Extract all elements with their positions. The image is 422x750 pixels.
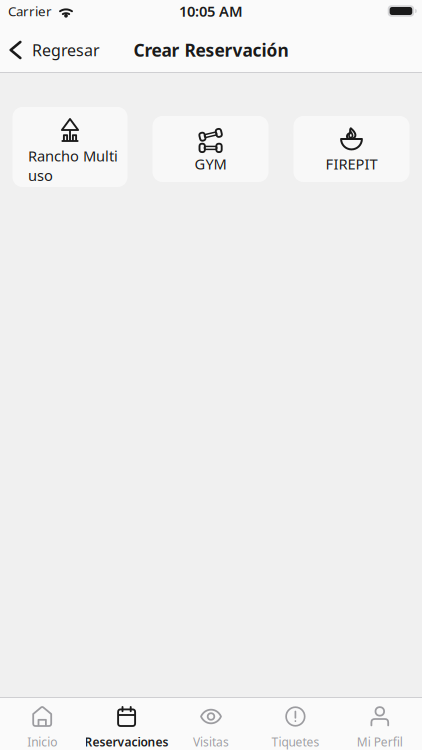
staticText: Visitas: [193, 734, 229, 750]
button[interactable]: Reservaciones: [84, 698, 169, 750]
button[interactable]: Mi Perfil: [338, 698, 422, 750]
staticText: GYM: [194, 154, 226, 173]
staticText: FIREPIT: [325, 154, 377, 173]
button[interactable]: Rancho Multi uso: [12, 107, 127, 187]
button[interactable]: Regresar: [0, 28, 108, 72]
staticText: Rancho Multi uso: [28, 146, 118, 185]
staticText: Mi Perfil: [357, 734, 403, 750]
staticText: Tiquetes: [271, 734, 319, 750]
button[interactable]: Inicio: [0, 698, 84, 750]
staticText: Regresar: [32, 39, 100, 61]
staticText: Carrier: [8, 2, 52, 20]
staticText: Reservaciones: [85, 734, 169, 750]
button[interactable]: GYM: [152, 116, 268, 182]
staticText: Inicio: [27, 734, 57, 750]
button[interactable]: Tiquetes: [253, 698, 338, 750]
staticText: 10:05 AM: [179, 1, 243, 21]
button[interactable]: FIREPIT: [293, 116, 409, 182]
button[interactable]: Visitas: [169, 698, 253, 750]
staticText: Crear Reservación: [133, 38, 288, 61]
